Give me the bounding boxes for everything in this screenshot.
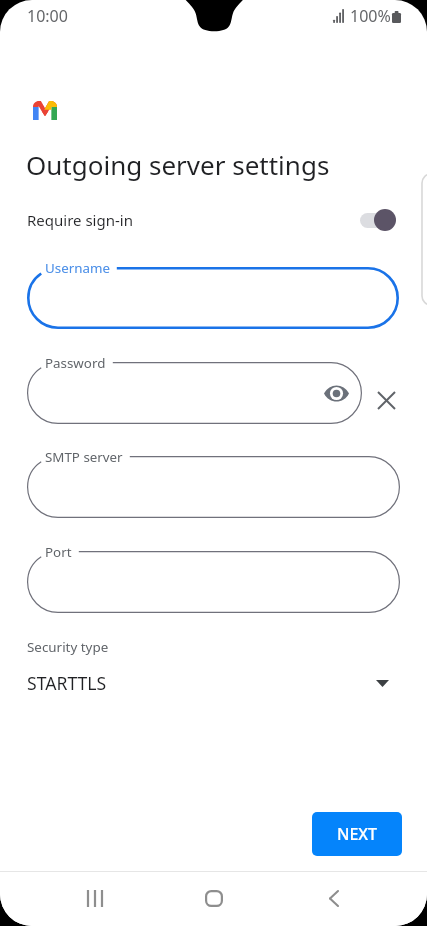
button[interactable]: Show password <box>321 378 351 408</box>
button[interactable]: Home <box>189 872 239 926</box>
button[interactable]: NEXT <box>312 812 402 856</box>
button[interactable]: Back <box>309 872 359 926</box>
staticText: STARTTLS <box>27 671 107 695</box>
button[interactable]: Username <box>27 267 399 329</box>
staticText: Outgoing server settings <box>26 147 330 182</box>
button[interactable]: Clear <box>368 382 404 418</box>
staticText: Require sign-in <box>27 210 133 230</box>
staticText: 10:00 <box>27 5 68 27</box>
staticText: Port <box>45 543 72 561</box>
button[interactable]: SMTP server <box>27 456 400 518</box>
button[interactable]: Password <box>27 362 362 424</box>
button[interactable]: Recent apps <box>70 872 120 926</box>
staticText: Username <box>45 259 110 277</box>
button[interactable]: Port <box>27 551 400 613</box>
button[interactable]: Require sign-in <box>0 203 427 237</box>
staticText: Password <box>45 354 106 372</box>
staticText: SMTP server <box>45 448 123 466</box>
staticText: 100% <box>350 5 391 27</box>
staticText: Security type <box>27 638 109 656</box>
staticText: NEXT <box>337 823 378 845</box>
button[interactable]: STARTTLS <box>0 666 427 700</box>
button[interactable] <box>360 207 396 233</box>
